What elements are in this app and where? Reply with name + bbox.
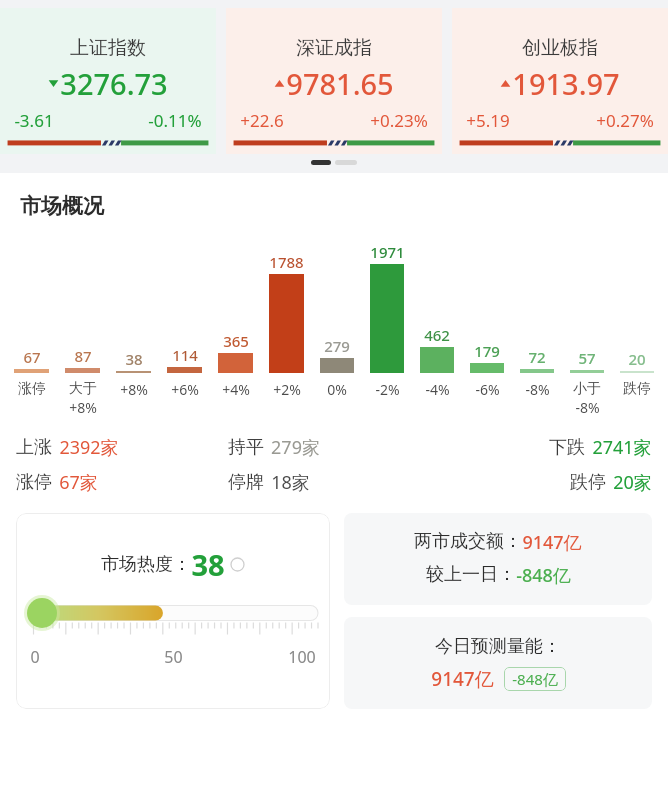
- staticText: 72: [528, 347, 546, 367]
- staticText: -4%: [425, 380, 450, 399]
- staticText: 两市成交额：: [414, 530, 522, 553]
- staticText: 3276.73: [60, 64, 168, 103]
- staticText: 9147亿: [522, 530, 582, 555]
- staticText: 279: [324, 336, 350, 356]
- staticText: 跌停: [570, 471, 606, 494]
- staticText: +6%: [171, 380, 199, 399]
- staticText: 114: [172, 345, 198, 365]
- staticText: 2392家: [59, 435, 119, 460]
- staticText: 深证成指: [296, 36, 372, 60]
- staticText: 停牌: [228, 471, 264, 494]
- staticText: -3.61: [14, 109, 54, 132]
- staticText: +8%: [120, 380, 148, 399]
- button[interactable]: 今日预测量能：: [344, 617, 652, 709]
- button[interactable]: 深证成指: [226, 8, 442, 154]
- staticText: 1913.97: [512, 64, 620, 103]
- staticText: -2%: [375, 380, 400, 399]
- staticText: -8%: [525, 380, 550, 399]
- staticText: -0.11%: [148, 109, 202, 132]
- staticText: 50: [164, 646, 183, 668]
- button[interactable]: 创业板指: [452, 8, 668, 154]
- staticText: 小于: [573, 380, 601, 398]
- staticText: 1788: [269, 252, 304, 272]
- staticText: 市场概况: [20, 193, 104, 219]
- staticText: 279家: [271, 435, 320, 460]
- staticText: 跌停: [623, 380, 651, 398]
- staticText: 462: [424, 325, 450, 345]
- staticText: -6%: [475, 380, 500, 399]
- staticText: 下跌: [549, 436, 585, 459]
- staticText: 9147亿: [431, 666, 494, 692]
- staticText: +8%: [69, 398, 97, 417]
- staticText: +2%: [273, 380, 301, 399]
- staticText: 持平: [228, 436, 264, 459]
- staticText: 9781.65: [286, 64, 394, 103]
- staticText: 87: [74, 346, 92, 366]
- staticText: +0.27%: [596, 109, 654, 132]
- staticText: 今日预测量能：: [435, 635, 561, 658]
- staticText: 20家: [613, 470, 652, 495]
- staticText: 20: [628, 349, 646, 369]
- other: 帮助说明: [230, 557, 245, 572]
- staticText: 38: [191, 545, 225, 584]
- staticText: 大于: [69, 380, 97, 398]
- staticText: 18家: [271, 470, 310, 495]
- staticText: +4%: [222, 380, 250, 399]
- staticText: 0: [30, 646, 40, 668]
- staticText: 0%: [327, 380, 347, 399]
- staticText: +5.19: [466, 109, 510, 132]
- staticText: 上证指数: [70, 36, 146, 60]
- staticText: 67: [23, 347, 41, 367]
- staticText: 市场热度：: [101, 553, 191, 576]
- staticText: 57: [578, 348, 596, 368]
- staticText: 1971: [370, 242, 405, 262]
- staticText: 2741家: [592, 435, 652, 460]
- staticText: 涨停: [18, 380, 46, 398]
- staticText: 上涨: [16, 436, 52, 459]
- button[interactable]: 上证指数: [0, 8, 216, 154]
- button[interactable]: 市场热度：: [16, 513, 330, 709]
- staticText: -848亿: [516, 563, 571, 588]
- staticText: 较上一日：: [426, 563, 516, 586]
- staticText: 67家: [59, 470, 98, 495]
- staticText: 涨停: [16, 471, 52, 494]
- staticText: +0.23%: [370, 109, 428, 132]
- staticText: 179: [474, 341, 500, 361]
- staticText: 365: [223, 331, 249, 351]
- staticText: +22.6: [240, 109, 284, 132]
- staticText: 100: [288, 646, 316, 668]
- button[interactable]: 两市成交额：: [344, 513, 652, 605]
- staticText: -848亿: [512, 669, 558, 689]
- staticText: 创业板指: [522, 36, 598, 60]
- staticText: -8%: [575, 398, 600, 417]
- staticText: 38: [125, 349, 143, 369]
